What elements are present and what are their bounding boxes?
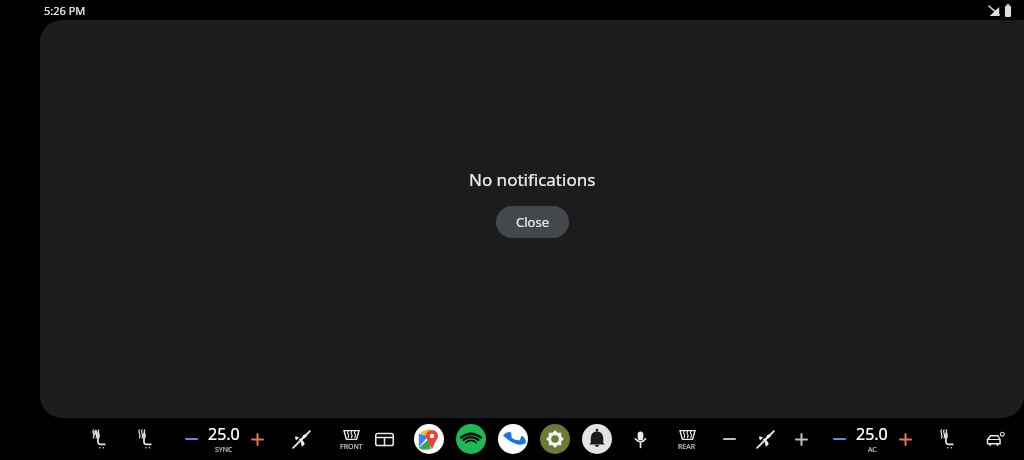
staticText: Close [516, 213, 549, 231]
button[interactable]: Settings [539, 423, 571, 455]
staticText: AC [868, 445, 877, 455]
button[interactable]: Passenger seat heating [932, 424, 962, 454]
staticText: 25.0 [208, 423, 240, 445]
button[interactable]: Rear defrost [674, 425, 700, 454]
button[interactable]: All apps [369, 424, 399, 454]
button[interactable]: Fan off [750, 424, 780, 454]
button[interactable]: Decrease temperature [180, 428, 202, 450]
staticText: REAR [678, 442, 696, 452]
button[interactable]: Fan off [286, 424, 316, 454]
button[interactable]: Decrease fan speed [718, 428, 740, 450]
button[interactable]: Decrease temperature [828, 428, 850, 450]
staticText: SYNC [215, 445, 233, 455]
button[interactable]: Close [496, 206, 569, 238]
button[interactable]: Voice assistant [625, 424, 655, 454]
button[interactable]: Car settings [980, 424, 1010, 454]
staticText: FRONT [340, 442, 363, 452]
button[interactable]: Driver seat cooling [84, 424, 114, 454]
staticText: 5:26 PM [44, 3, 86, 18]
button[interactable]: Driver seat heating [130, 424, 160, 454]
button[interactable]: Spotify [455, 423, 487, 455]
button[interactable]: Phone [497, 423, 529, 455]
button[interactable]: Notifications [581, 423, 613, 455]
button[interactable]: Increase fan speed [790, 428, 812, 450]
button[interactable]: Front defrost [336, 425, 367, 454]
button[interactable]: Increase temperature [246, 428, 268, 450]
staticText: No notifications [469, 168, 596, 191]
button[interactable]: Increase temperature [894, 428, 916, 450]
staticText: 25.0 [856, 423, 888, 445]
button[interactable]: Maps [413, 423, 445, 455]
